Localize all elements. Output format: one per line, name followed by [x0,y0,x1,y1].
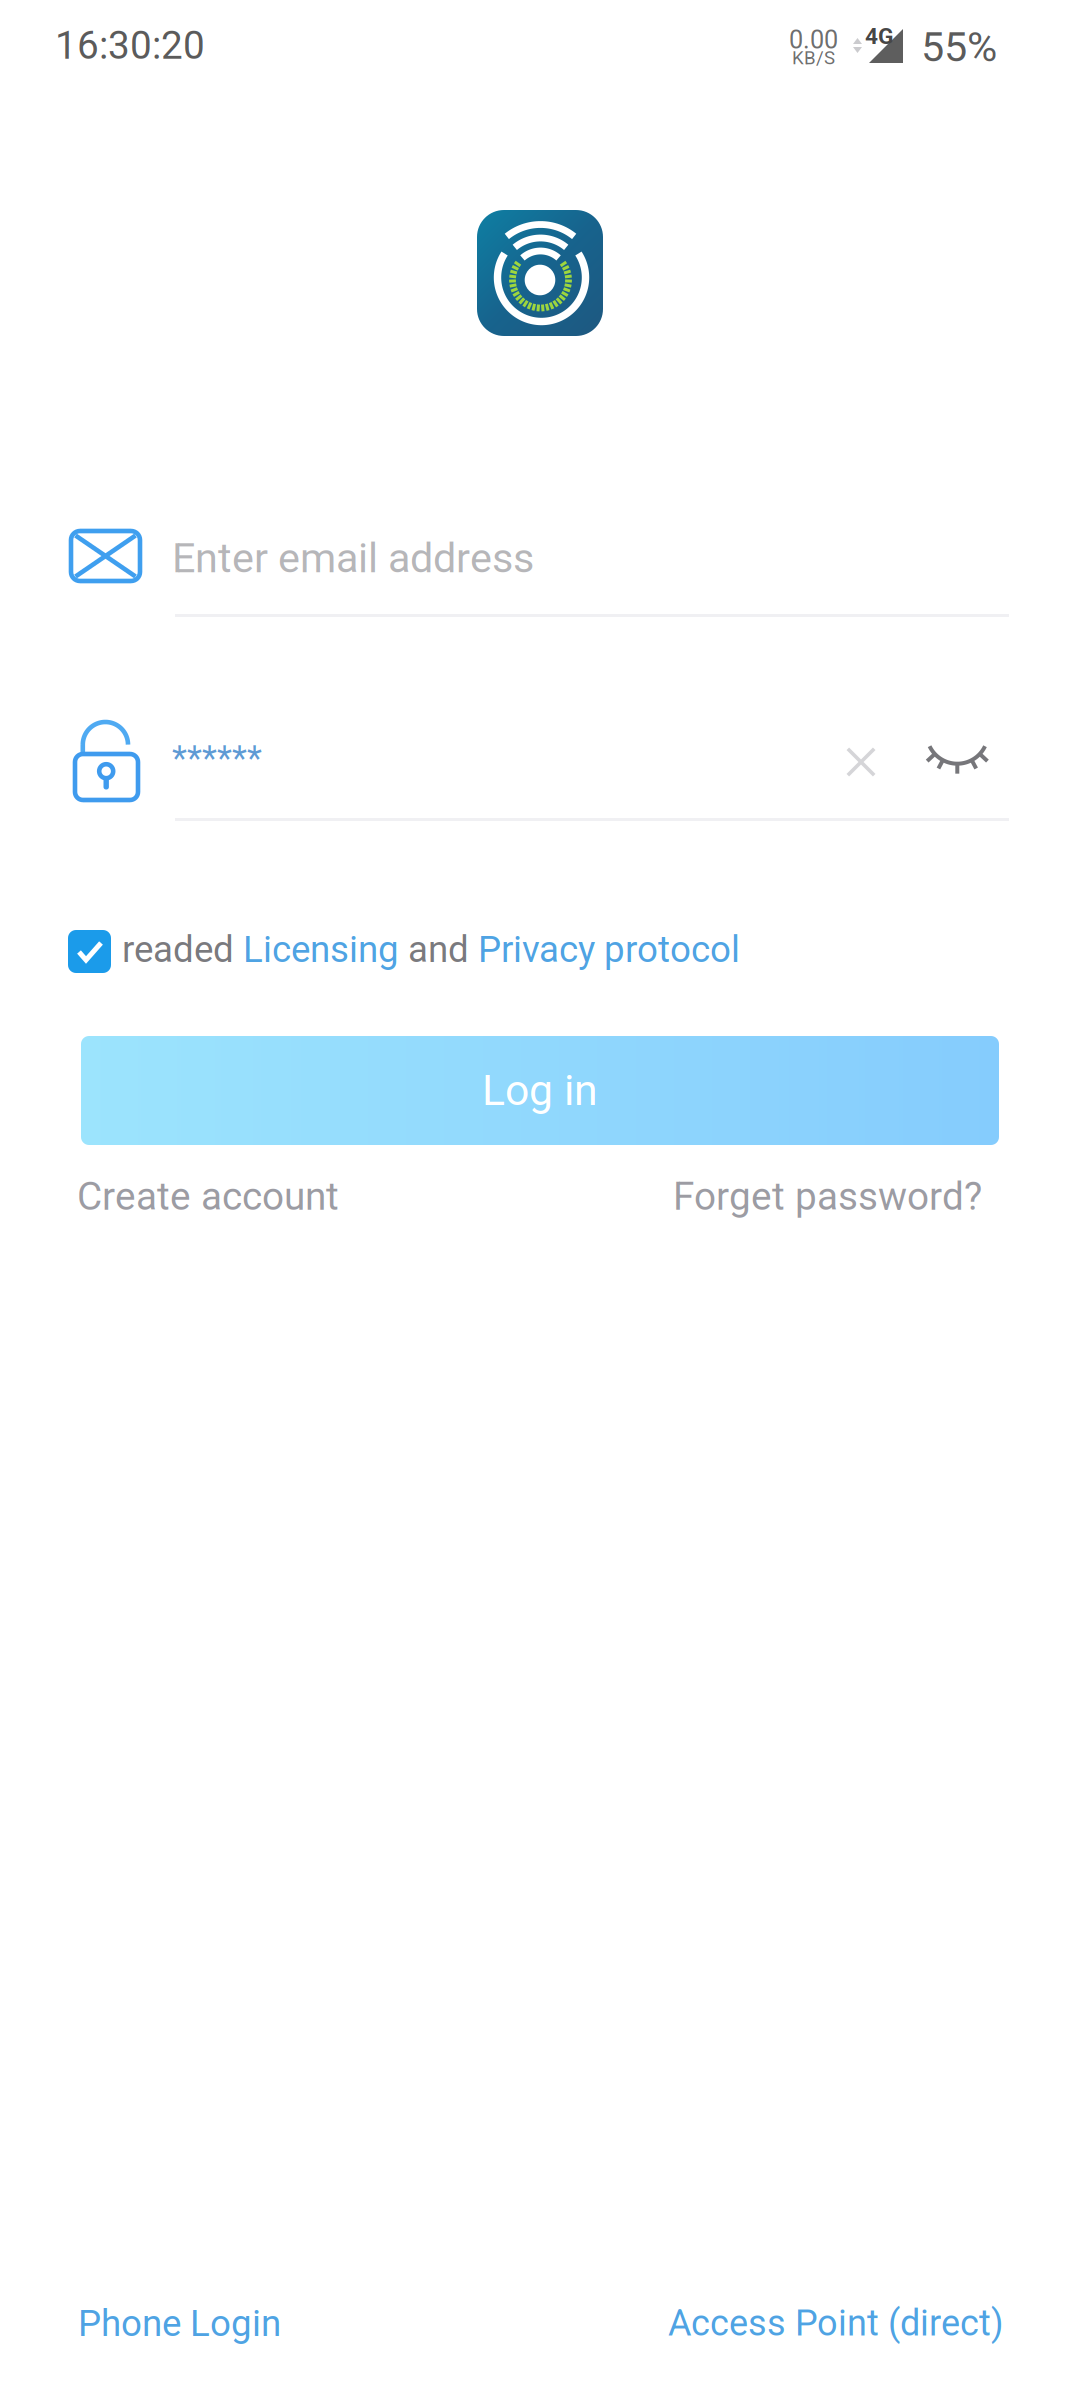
staticText: 55% [921,23,997,71]
button[interactable]: Access Point (direct) [668,2302,1004,2344]
staticText: Forget password? [673,1174,982,1219]
staticText: Create account [77,1174,339,1219]
staticText: Access Point (direct) [668,2302,1004,2344]
button[interactable]: Clear password [816,717,906,807]
staticText: 0.00 [789,25,838,55]
staticText: Phone Login [78,2302,281,2345]
staticText: Log in [482,1065,598,1115]
button[interactable]: Create account [77,1174,339,1219]
button[interactable]: Licensing [243,928,399,971]
button[interactable]: Show password [912,723,1008,789]
button[interactable]: Phone Login [78,2302,281,2345]
button[interactable]: Log in [81,1036,999,1145]
button[interactable]: Privacy protocol [478,928,740,971]
staticText: ****** [172,738,262,779]
staticText: 4G [865,23,893,50]
button[interactable]: Agree to terms [68,930,111,973]
staticText: Licensing [243,928,399,971]
staticText: Privacy protocol [478,928,740,971]
staticText: and [399,928,478,971]
staticText: Enter email address [172,534,534,582]
staticText: readed [122,928,243,971]
staticText: 16:30:20 [55,23,205,68]
button[interactable]: Forget password? [673,1174,982,1219]
staticText: KB/S [792,47,835,69]
